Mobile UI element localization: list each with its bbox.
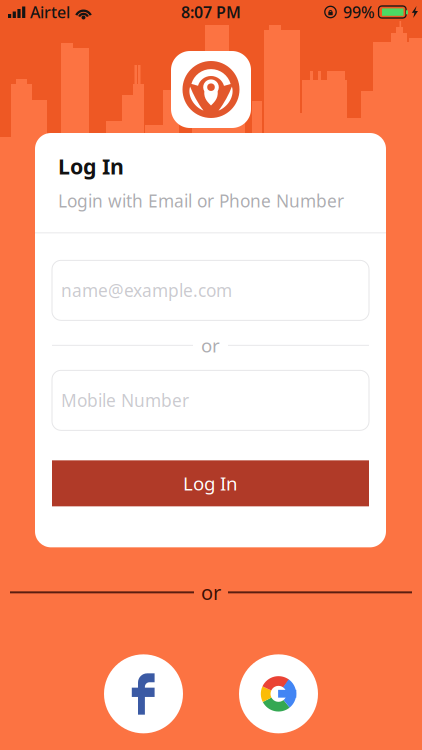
- staticText: Mobile Number: [61, 389, 189, 412]
- staticText: Airtel: [30, 1, 70, 23]
- staticText: or: [201, 579, 221, 606]
- button[interactable]: Continue with Facebook: [104, 654, 183, 733]
- staticText: or: [201, 333, 220, 358]
- staticText: name@example.com: [61, 279, 232, 302]
- button[interactable]: Log In: [52, 460, 369, 506]
- button[interactable]: Continue with Google: [239, 654, 318, 733]
- staticText: Log In: [58, 152, 124, 180]
- staticText: Login with Email or Phone Number: [58, 189, 344, 212]
- staticText: 8:07 PM: [181, 1, 241, 23]
- staticText: Log In: [183, 471, 238, 496]
- staticText: 99%: [343, 1, 375, 23]
